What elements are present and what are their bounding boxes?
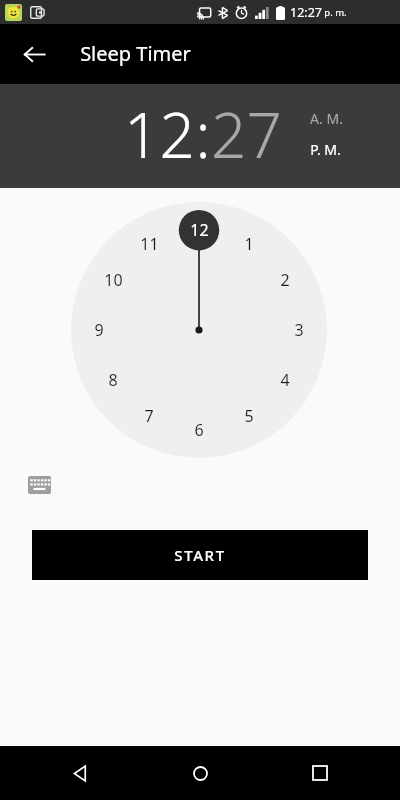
staticText: :	[195, 92, 211, 176]
staticText: 2	[280, 269, 290, 291]
button[interactable]: A. M.	[310, 109, 343, 128]
staticText: 12	[190, 219, 209, 241]
staticText: P. M.	[310, 140, 341, 159]
staticText: 3	[294, 319, 304, 341]
staticText: 8	[108, 369, 118, 391]
staticText: Sleep Timer	[80, 40, 191, 67]
button[interactable]: 27	[211, 92, 282, 176]
staticText: 9	[94, 319, 104, 341]
button[interactable]: Home	[176, 749, 224, 797]
staticText: 12	[124, 92, 195, 176]
button[interactable]: P. M.	[310, 140, 341, 159]
staticText: 5	[244, 405, 254, 427]
staticText: 4	[280, 369, 290, 391]
staticText: 11	[140, 233, 159, 255]
button[interactable]: Recent apps	[296, 749, 344, 797]
staticText: 6	[194, 419, 204, 441]
button[interactable]: Navigate up	[10, 30, 58, 78]
button[interactable]: START	[32, 530, 368, 580]
button[interactable]: Back	[56, 749, 104, 797]
staticText: START	[174, 545, 226, 565]
staticText: 10	[104, 269, 123, 291]
staticText: p. m.	[324, 6, 347, 19]
staticText: 1	[244, 233, 254, 255]
staticText: 27	[211, 92, 282, 176]
staticText: A. M.	[310, 109, 343, 128]
staticText: 12:27	[290, 4, 322, 21]
staticText: 7	[144, 405, 154, 427]
button[interactable]: Switch to keyboard input	[20, 466, 58, 504]
button[interactable]: Clock hour picker	[71, 202, 327, 458]
button[interactable]: 12	[124, 92, 195, 176]
